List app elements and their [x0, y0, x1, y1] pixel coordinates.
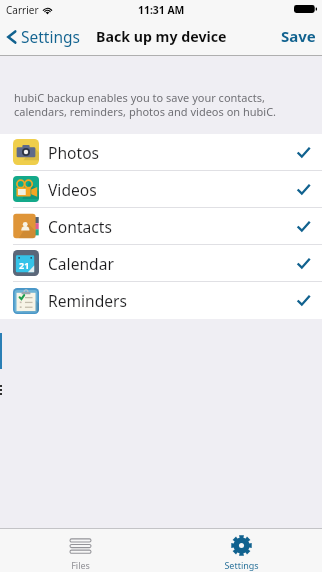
- staticText: 21: [19, 259, 30, 271]
- staticText: Videos: [48, 179, 97, 200]
- button[interactable]: Save: [273, 26, 322, 46]
- staticText: Settings: [224, 559, 259, 571]
- staticText: Photos: [48, 142, 100, 163]
- staticText: Settings: [21, 26, 80, 47]
- button[interactable]: Contacts: [0, 208, 322, 245]
- staticText: Files: [71, 559, 90, 571]
- staticText: Back up my device: [96, 27, 227, 46]
- button[interactable]: Photos: [0, 134, 322, 171]
- staticText: Calendar: [48, 253, 114, 274]
- staticText: Reminders: [48, 290, 128, 311]
- other: Files: [70, 537, 91, 558]
- staticText: Contacts: [48, 216, 112, 237]
- button[interactable]: Settings: [0, 26, 86, 47]
- button[interactable]: Settings: [161, 529, 322, 572]
- button[interactable]: Files: [0, 529, 161, 572]
- button[interactable]: Videos: [0, 171, 322, 208]
- button[interactable]: 21: [0, 245, 322, 282]
- staticText: hubiC backup enables you to save your co…: [14, 90, 277, 119]
- other: Settings: [231, 535, 252, 556]
- staticText: 11:31 AM: [138, 3, 185, 17]
- button[interactable]: Reminders: [0, 282, 322, 319]
- staticText: Carrier: [6, 3, 39, 17]
- staticText: Save: [281, 26, 316, 46]
